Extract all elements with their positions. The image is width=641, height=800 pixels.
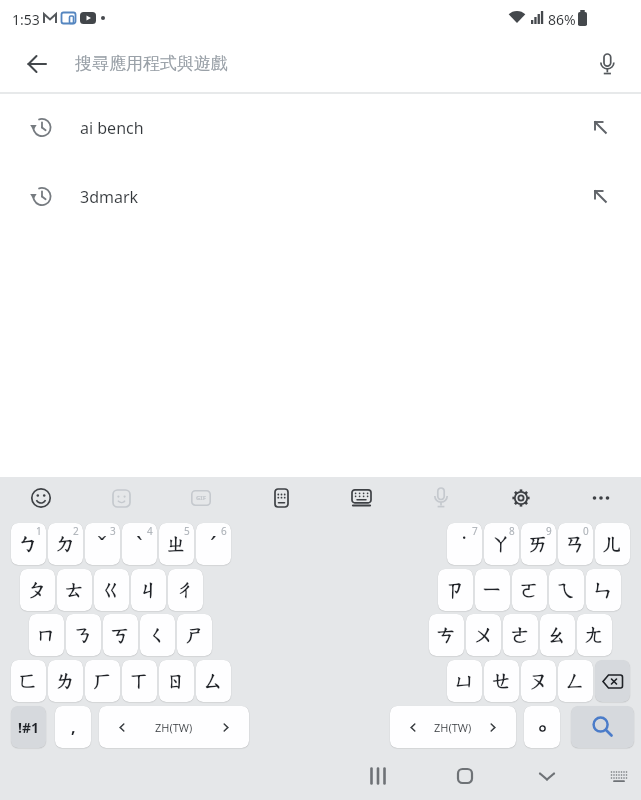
button[interactable]: ㄗ	[438, 569, 473, 611]
staticText: ㄗ	[445, 578, 466, 603]
button[interactable]: ㄧ	[475, 569, 510, 611]
button[interactable]	[595, 660, 630, 702]
button[interactable]	[481, 477, 561, 519]
button[interactable]: GIF	[161, 477, 241, 519]
button[interactable]: ,	[55, 706, 91, 748]
button[interactable]: ㄌ	[48, 660, 83, 702]
staticText: ㄐ	[138, 578, 159, 603]
button[interactable]: ㄊ	[57, 569, 92, 611]
staticText: ㄙ	[203, 669, 224, 694]
staticText: ㄅ	[18, 532, 39, 557]
button[interactable]	[524, 706, 560, 748]
button[interactable]	[321, 477, 401, 519]
button[interactable]: ㄉ	[48, 523, 83, 565]
button[interactable]	[561, 477, 641, 519]
button[interactable]	[15, 52, 59, 76]
button[interactable]	[571, 706, 634, 748]
staticText: ㄈ	[18, 669, 39, 694]
staticText: 搜尋應用程式與遊戲	[75, 53, 228, 74]
button[interactable]: ˊ	[196, 523, 231, 565]
button[interactable]	[81, 477, 161, 519]
button[interactable]	[601, 760, 637, 792]
staticText: ㄑ	[147, 623, 168, 648]
staticText: 0	[583, 524, 589, 538]
staticText: !#1	[18, 718, 39, 737]
button[interactable]: ㄟ	[549, 569, 584, 611]
button[interactable]	[529, 760, 565, 792]
button[interactable]: ㄨ	[466, 614, 501, 656]
button[interactable]: ㄛ	[512, 569, 547, 611]
staticText: ㄋ	[73, 623, 94, 648]
button[interactable]: ˋ	[122, 523, 157, 565]
button[interactable]: ZH(TW)	[390, 706, 516, 748]
staticText: ㄝ	[491, 669, 512, 694]
button[interactable]	[0, 477, 81, 519]
staticText: ㄞ	[528, 532, 549, 557]
staticText: ㄏ	[92, 669, 113, 694]
staticText: ㄧ	[482, 578, 503, 603]
button[interactable]: ㄎ	[103, 614, 138, 656]
button[interactable]: ㄅ	[11, 523, 46, 565]
button[interactable]: !#1	[11, 706, 46, 748]
button[interactable]: ㄦ	[595, 523, 630, 565]
button[interactable]: ㄠ	[540, 614, 575, 656]
button[interactable]: ˙	[447, 523, 482, 565]
staticText: ㄓ	[166, 532, 187, 557]
button[interactable]: ㄆ	[20, 569, 55, 611]
button[interactable]: ㄈ	[11, 660, 46, 702]
button[interactable]: ˇ	[85, 523, 120, 565]
button[interactable]	[401, 477, 481, 519]
staticText: ㄉ	[55, 532, 76, 557]
staticText: GIF	[196, 494, 206, 502]
staticText: 8	[509, 524, 515, 538]
button[interactable]: ㄣ	[586, 569, 621, 611]
staticText: ㄟ	[556, 578, 577, 603]
button[interactable]: ㄑ	[140, 614, 175, 656]
staticText: 9	[546, 524, 552, 538]
button[interactable]: ai bench	[0, 93, 641, 162]
staticText: ㄤ	[584, 623, 605, 648]
button[interactable]: ㄤ	[577, 614, 612, 656]
button[interactable]: ㄜ	[503, 614, 538, 656]
staticText: ㄔ	[175, 578, 196, 603]
button[interactable]: ㄡ	[521, 660, 556, 702]
button[interactable]: ㄐ	[131, 569, 166, 611]
staticText: ㄖ	[166, 669, 187, 694]
button[interactable]: ZH(TW)	[99, 706, 249, 748]
button[interactable]: ㄍ	[94, 569, 129, 611]
staticText: ˋ	[136, 528, 143, 561]
button[interactable]: ㄇ	[29, 614, 64, 656]
button[interactable]	[447, 760, 483, 792]
button[interactable]: ㄕ	[177, 614, 212, 656]
button[interactable]: 搜尋應用程式與遊戲	[70, 44, 570, 84]
staticText: ㄠ	[547, 623, 568, 648]
staticText: ㄛ	[519, 578, 540, 603]
staticText: ˇ	[97, 528, 108, 561]
staticText: ,	[71, 716, 76, 738]
staticText: ㄨ	[473, 623, 494, 648]
button[interactable]: ㄏ	[85, 660, 120, 702]
staticText: ㄩ	[454, 669, 475, 694]
button[interactable]: ㄥ	[558, 660, 593, 702]
button[interactable]	[590, 50, 624, 78]
button[interactable]: ㄋ	[66, 614, 101, 656]
button[interactable]: ㄞ	[521, 523, 556, 565]
button[interactable]: 3dmark	[0, 162, 641, 231]
button[interactable]: ㄓ	[159, 523, 194, 565]
button[interactable]: ㄒ	[122, 660, 157, 702]
button[interactable]: ㄝ	[484, 660, 519, 702]
button[interactable]: ㄖ	[159, 660, 194, 702]
staticText: ㄍ	[101, 578, 122, 603]
button[interactable]: ㄔ	[168, 569, 203, 611]
staticText: ai bench	[80, 117, 144, 139]
button[interactable]	[360, 760, 396, 792]
staticText: 1	[36, 524, 42, 538]
staticText: ZH(TW)	[155, 720, 193, 735]
button[interactable]: ㄩ	[447, 660, 482, 702]
button[interactable]: ㄘ	[429, 614, 464, 656]
button[interactable]: ㄢ	[558, 523, 593, 565]
button[interactable]: ㄚ	[484, 523, 519, 565]
button[interactable]	[241, 477, 321, 519]
staticText: 4	[147, 524, 153, 538]
button[interactable]: ㄙ	[196, 660, 231, 702]
